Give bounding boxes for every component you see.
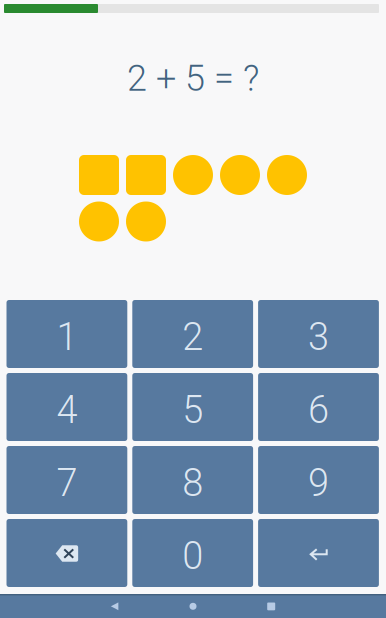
staticText: 9 (308, 461, 329, 505)
button[interactable]: Recent apps (259, 594, 283, 618)
staticText: 6 (308, 388, 329, 432)
button[interactable]: Back (103, 594, 126, 618)
button[interactable]: 3 (258, 300, 379, 368)
button[interactable]: 4 (6, 373, 127, 441)
staticText: 0 (182, 534, 203, 578)
button[interactable]: 2 (132, 300, 253, 368)
button[interactable]: 0 (132, 519, 253, 587)
button[interactable]: 7 (6, 446, 127, 514)
staticText: 7 (56, 461, 77, 505)
staticText: 8 (182, 461, 203, 505)
button[interactable]: Delete (6, 519, 127, 587)
staticText: 1 (56, 315, 77, 359)
button[interactable]: Home (181, 595, 204, 618)
staticText: 2 (182, 315, 203, 359)
staticText: 4 (56, 388, 77, 432)
button[interactable]: 8 (132, 446, 253, 514)
staticText: 2 + 5 = ? (127, 57, 259, 100)
button[interactable]: Enter (258, 519, 379, 587)
button[interactable]: 6 (258, 373, 379, 441)
button[interactable]: 9 (258, 446, 379, 514)
button[interactable]: 1 (6, 300, 127, 368)
staticText: 3 (308, 315, 329, 359)
staticText: 5 (182, 388, 203, 432)
button[interactable]: 5 (132, 373, 253, 441)
